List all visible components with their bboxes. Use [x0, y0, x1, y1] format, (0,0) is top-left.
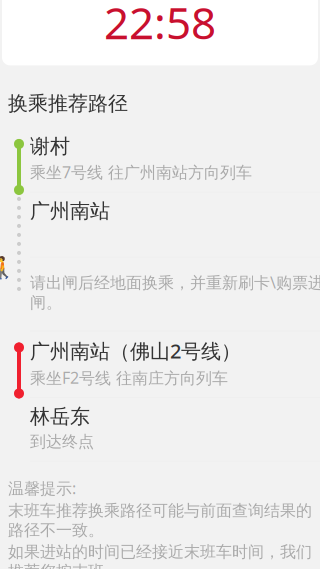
- staticText: 广州南站: [30, 199, 110, 223]
- staticText: 请出闸后经地面换乘，并重新刷卡\购票进闸。: [30, 272, 320, 312]
- staticText: 温馨提示:: [8, 477, 76, 499]
- staticText: 乘坐F2号线 往南庄方向列车: [30, 367, 228, 388]
- staticText: 如果进站的时间已经接近末班车时间，我们推荐您按末班: [8, 542, 312, 569]
- staticText: 换乘推荐路径: [8, 91, 128, 116]
- staticText: 到达终点: [30, 432, 94, 451]
- staticText: 乘坐7号线 往广州南站方向列车: [30, 161, 252, 183]
- staticText: 末班车推荐换乘路径可能与前面查询结果的路径不一致。: [8, 501, 312, 540]
- staticText: 林岳东: [30, 404, 90, 429]
- staticText: 22:58: [104, 0, 216, 51]
- staticText: 🚶: [0, 256, 17, 280]
- staticText: 谢村: [30, 134, 70, 158]
- staticText: 广州南站（佛山2号线）: [30, 337, 241, 364]
